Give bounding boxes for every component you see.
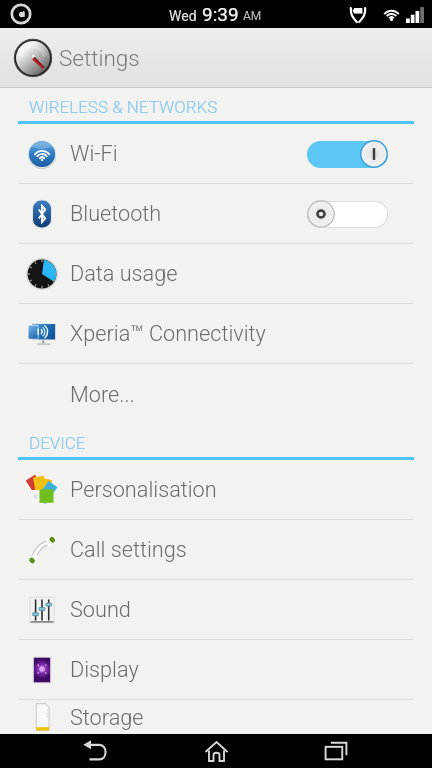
staticText: Call settings — [70, 537, 187, 562]
staticText: Xperia™ Connectivity — [70, 321, 266, 346]
staticText: Bluetooth — [70, 201, 162, 226]
staticText: Storage — [70, 705, 144, 730]
button[interactable]: Storage — [0, 700, 432, 734]
staticText: 9:39 — [202, 3, 239, 25]
staticText: Display — [70, 657, 139, 682]
staticText: More... — [70, 382, 135, 407]
staticText: Data usage — [70, 261, 178, 286]
button[interactable]: Display — [0, 640, 432, 700]
staticText: Sound — [70, 597, 131, 622]
staticText: Personalisation — [70, 477, 217, 502]
button[interactable]: Wi-Fi — [0, 124, 432, 184]
button[interactable]: Call settings — [0, 520, 432, 580]
staticText: DEVICE — [29, 433, 86, 453]
staticText: Settings — [59, 45, 140, 71]
button[interactable]: Personalisation — [0, 460, 432, 520]
button[interactable]: Bluetooth — [0, 184, 432, 244]
button[interactable]: Back — [68, 734, 122, 768]
button[interactable]: Data usage — [0, 244, 432, 304]
staticText: Wed — [169, 8, 197, 24]
button[interactable] — [307, 140, 388, 168]
button[interactable] — [307, 200, 388, 228]
staticText: AM — [243, 9, 262, 23]
button[interactable]: Xperia™ Connectivity — [0, 304, 432, 364]
staticText: Wi-Fi — [70, 141, 118, 166]
button[interactable]: Home — [189, 734, 243, 768]
button[interactable]: Recent apps — [309, 734, 363, 768]
button[interactable]: Sound — [0, 580, 432, 640]
button[interactable]: More... — [0, 364, 432, 424]
staticText: WIRELESS & NETWORKS — [29, 97, 218, 117]
